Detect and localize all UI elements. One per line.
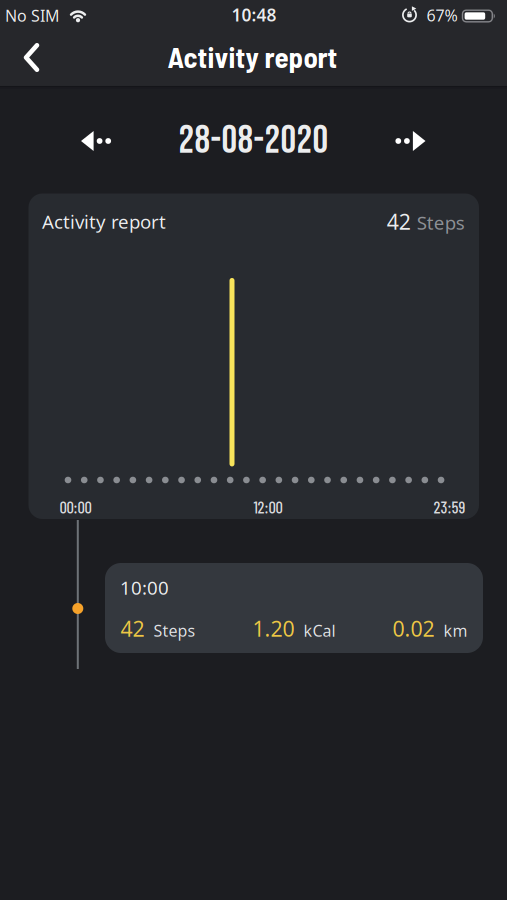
staticText: Steps <box>417 210 465 235</box>
staticText: km <box>443 620 467 641</box>
staticText: Activity report <box>167 39 337 74</box>
staticText: 10:00 <box>120 575 169 600</box>
staticText: Activity report <box>42 209 166 234</box>
staticText: kCal <box>303 620 335 641</box>
staticText: 23:59 <box>433 497 465 517</box>
staticText: 42 <box>387 207 411 236</box>
staticText: No SIM <box>5 5 60 26</box>
staticText: 0.02 <box>392 614 434 643</box>
staticText: 42 <box>120 614 144 643</box>
staticText: 00:00 <box>60 497 92 517</box>
staticText: Steps <box>153 620 195 641</box>
staticText: 28-08-2020 <box>178 118 328 164</box>
staticText: 67% <box>426 5 457 26</box>
staticText: 1.20 <box>252 614 294 643</box>
staticText: 12:00 <box>253 497 282 517</box>
staticText: 10:48 <box>231 3 276 26</box>
